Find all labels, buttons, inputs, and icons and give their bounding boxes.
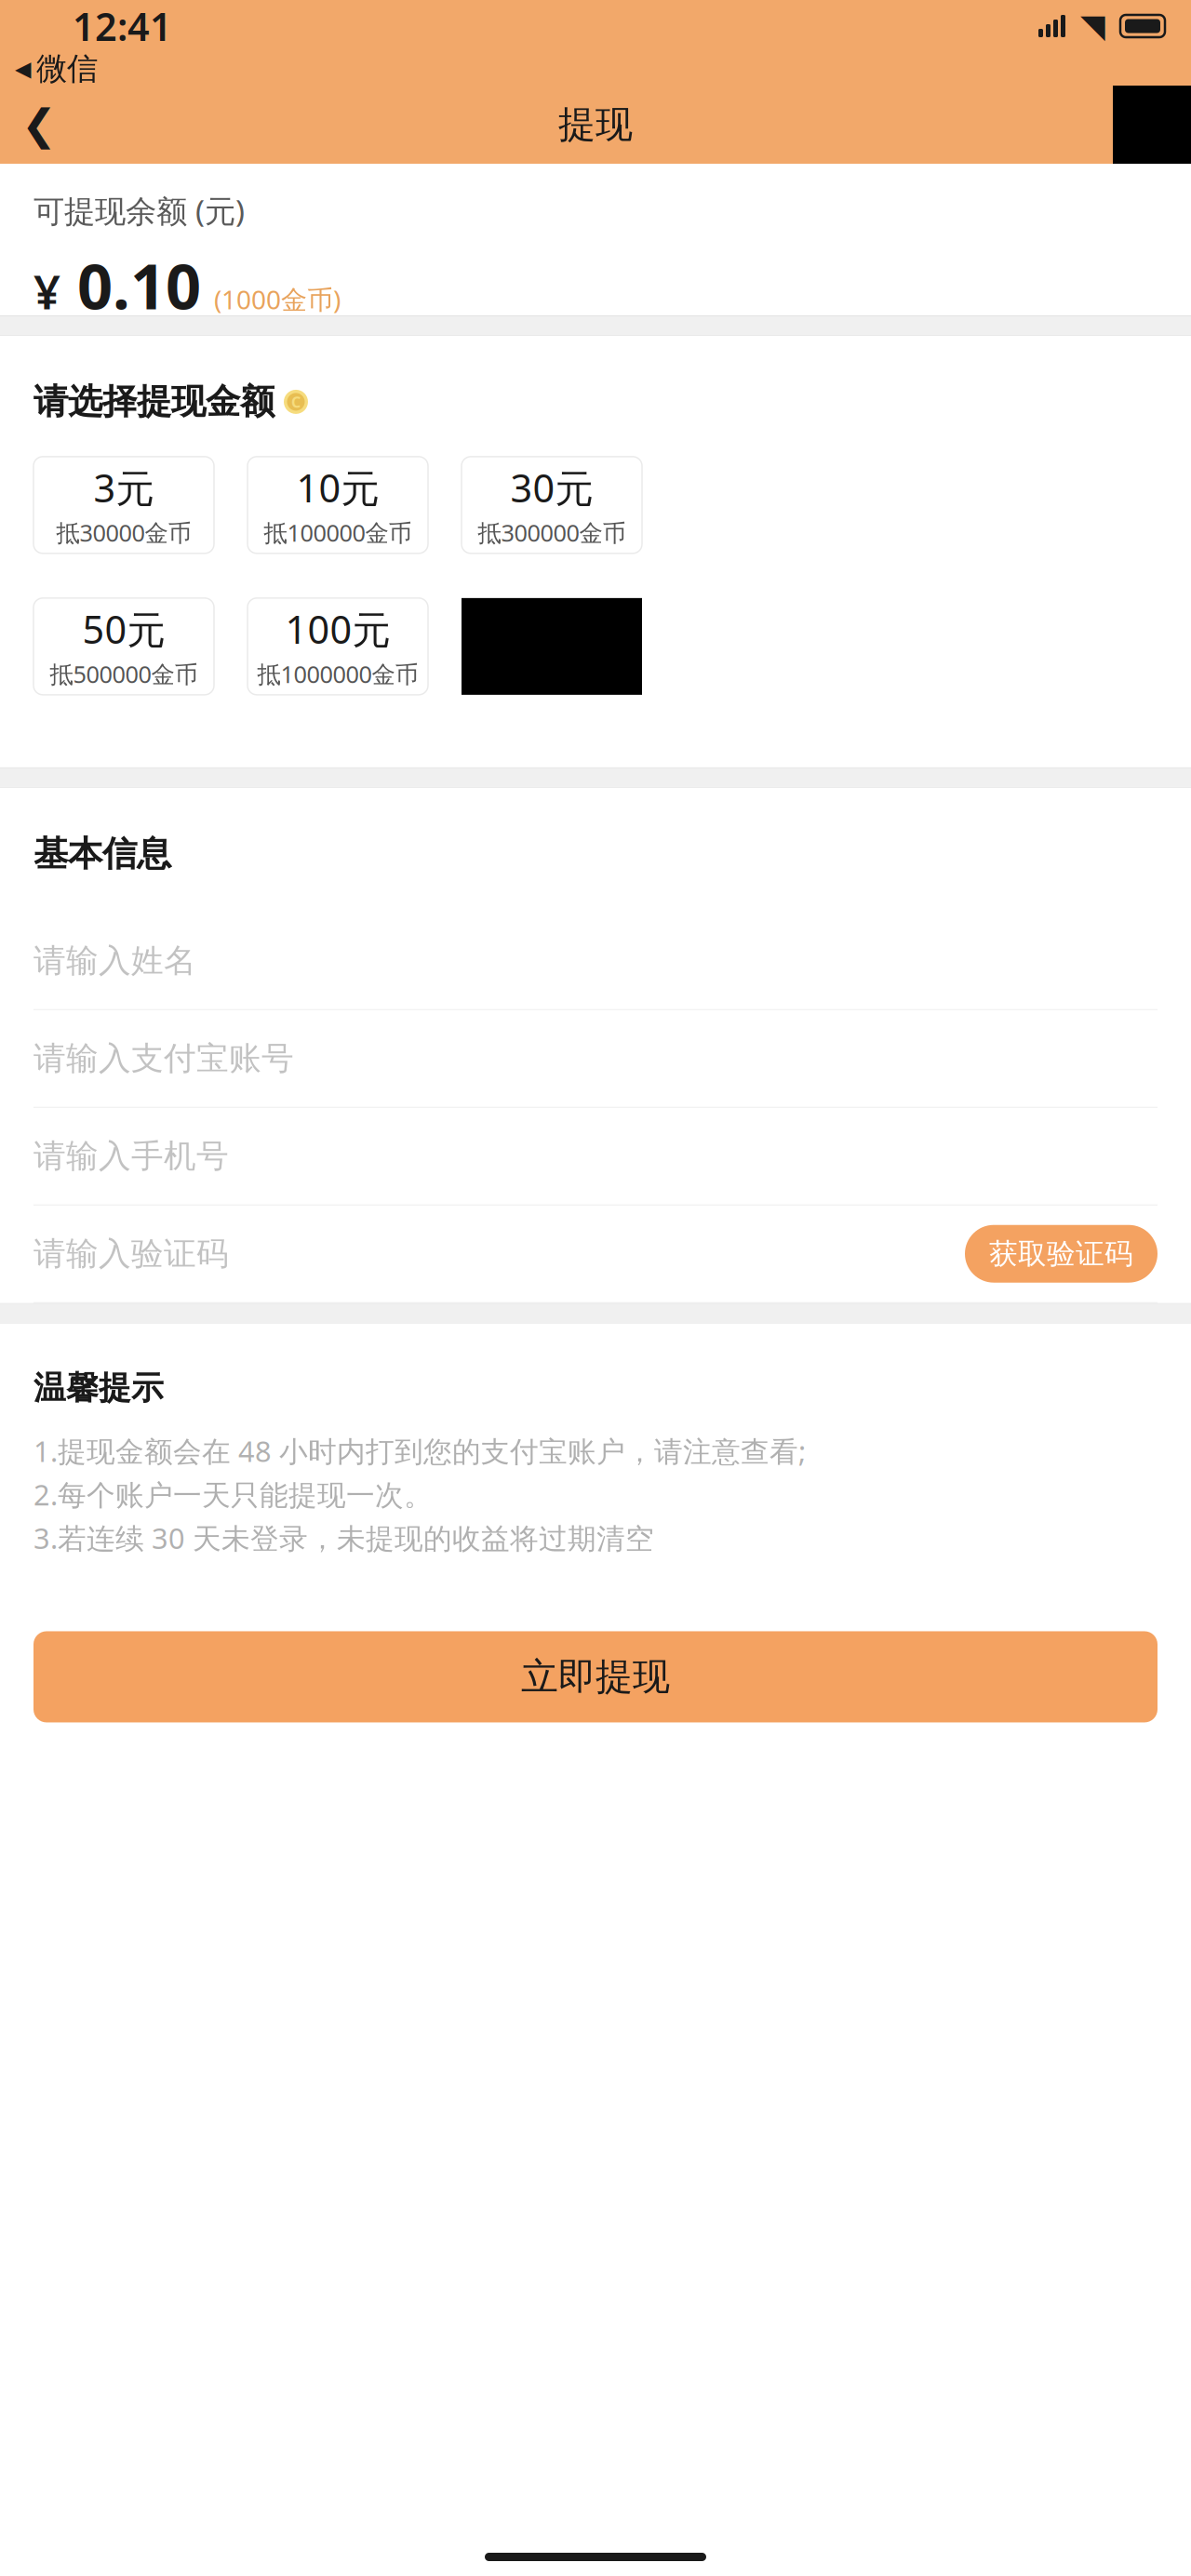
staticText: (1000金币): [214, 282, 341, 316]
staticText: C: [291, 392, 301, 412]
staticText: 抵100000金币: [264, 517, 412, 548]
button[interactable]: 3元: [33, 457, 214, 553]
button[interactable]: 10元: [248, 457, 428, 553]
staticText: 基本信息: [33, 833, 171, 875]
staticText: 请输入支付宝账号: [33, 1039, 294, 1078]
staticText: 抵1000000金币: [257, 658, 418, 689]
staticText: ◀: [15, 57, 31, 81]
staticText: 1.提现金额会在 48 小时内打到您的支付宝账户，请注意查看;: [33, 1432, 806, 1470]
staticText: 50元: [82, 603, 165, 654]
staticText: 可提现余额 (元): [33, 190, 245, 231]
button[interactable]: 返回: [0, 86, 78, 164]
staticText: 12:41: [73, 1, 172, 52]
staticText: 3.若连续 30 天未登录，未提现的收益将过期清空: [33, 1519, 654, 1557]
staticText: 温馨提示: [33, 1368, 164, 1408]
staticText: 10元: [296, 462, 379, 513]
staticText: 请选择提现金额: [33, 380, 274, 423]
staticText: 立即提现: [521, 1654, 670, 1700]
staticText: 抵500000金币: [50, 658, 198, 689]
staticText: 请输入姓名: [33, 941, 196, 981]
staticText: 2.每个账户一天只能提现一次。: [33, 1475, 433, 1513]
staticText: 微信: [36, 50, 98, 88]
staticText: 抵300000金币: [478, 517, 626, 548]
staticText: 提现: [558, 102, 633, 147]
button[interactable]: 立即提现: [33, 1631, 1158, 1722]
staticText: 抵30000金币: [56, 517, 191, 548]
staticText: 0.10: [77, 244, 201, 326]
staticText: 获取验证码: [989, 1236, 1133, 1271]
button[interactable]: 50元: [33, 598, 214, 695]
staticText: 请输入验证码: [33, 1234, 229, 1274]
staticText: ❮: [21, 101, 57, 149]
staticText: ¥: [33, 260, 60, 322]
staticText: 30元: [510, 462, 593, 513]
button[interactable]: 30元: [462, 457, 642, 553]
staticText: 请输入手机号: [33, 1136, 229, 1176]
button[interactable]: 100元: [248, 598, 428, 695]
staticText: ◥: [1080, 8, 1105, 44]
staticText: 100元: [285, 603, 390, 654]
button[interactable]: 获取验证码: [965, 1225, 1158, 1283]
staticText: 3元: [94, 462, 154, 513]
